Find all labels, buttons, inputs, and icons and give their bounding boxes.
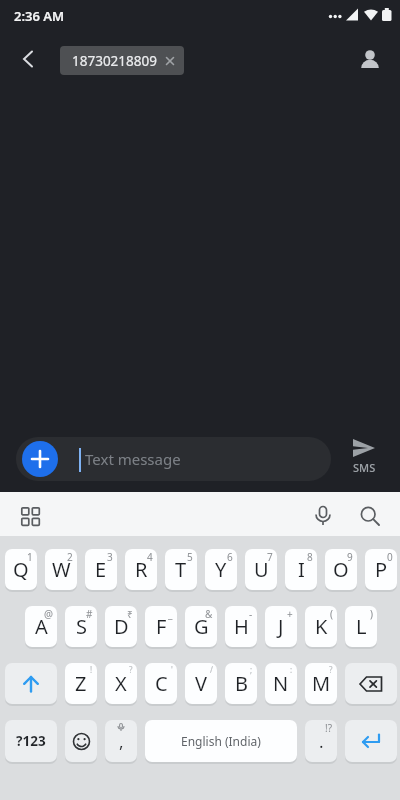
button[interactable]: I bbox=[285, 549, 317, 590]
staticText: D bbox=[114, 613, 129, 640]
button[interactable] bbox=[22, 441, 58, 477]
button[interactable]: A bbox=[25, 606, 57, 647]
staticText: Y bbox=[215, 556, 227, 583]
button[interactable]: M bbox=[305, 663, 337, 704]
staticText: N bbox=[273, 670, 289, 697]
staticText: ? bbox=[329, 664, 333, 675]
button[interactable]: 18730218809 bbox=[60, 46, 184, 75]
staticText: W bbox=[52, 556, 71, 583]
staticText: O bbox=[333, 556, 349, 583]
staticText: . bbox=[319, 730, 324, 753]
button[interactable]: English (India) bbox=[145, 720, 297, 762]
button[interactable]: C bbox=[145, 663, 177, 704]
staticText: H bbox=[234, 613, 249, 640]
staticText: X bbox=[115, 670, 127, 697]
staticText: R bbox=[135, 556, 148, 583]
staticText: Text message bbox=[85, 449, 181, 469]
button[interactable]: B bbox=[225, 663, 257, 704]
staticText: ?123 bbox=[16, 732, 46, 750]
staticText: 18730218809 bbox=[72, 52, 157, 70]
staticText: Z bbox=[75, 670, 87, 697]
staticText: A bbox=[35, 613, 48, 640]
button[interactable]: G bbox=[185, 606, 217, 647]
button[interactable] bbox=[5, 663, 57, 704]
staticText: K bbox=[315, 613, 328, 640]
button[interactable] bbox=[65, 720, 97, 762]
button[interactable] bbox=[345, 663, 397, 704]
staticText: 2:36 AM bbox=[14, 7, 65, 25]
staticText: @ bbox=[44, 607, 53, 621]
staticText: U bbox=[254, 556, 269, 583]
button[interactable]: Z bbox=[65, 663, 97, 704]
button[interactable]: SMS bbox=[342, 436, 386, 484]
staticText: / bbox=[210, 664, 213, 675]
staticText: C bbox=[155, 670, 168, 697]
button[interactable]: R bbox=[125, 549, 157, 590]
button[interactable]: U bbox=[245, 549, 277, 590]
staticText: T bbox=[175, 556, 187, 583]
button[interactable] bbox=[345, 720, 397, 762]
button[interactable]: Q bbox=[5, 549, 37, 590]
button[interactable] bbox=[14, 44, 44, 74]
staticText: S bbox=[76, 613, 87, 640]
staticText: 8 bbox=[307, 550, 313, 564]
button[interactable]: X bbox=[105, 663, 137, 704]
staticText: 0 bbox=[387, 550, 393, 564]
staticText: 6 bbox=[227, 550, 233, 564]
staticText: 9 bbox=[347, 550, 353, 564]
staticText: + bbox=[287, 607, 293, 621]
staticText: 7 bbox=[267, 550, 273, 564]
button[interactable] bbox=[356, 45, 384, 73]
button[interactable]: L bbox=[345, 606, 377, 647]
button[interactable] bbox=[16, 502, 44, 530]
button[interactable]: P bbox=[365, 549, 397, 590]
button[interactable]: J bbox=[265, 606, 297, 647]
staticText: M bbox=[312, 670, 331, 697]
staticText: G bbox=[194, 613, 209, 640]
button[interactable]: . bbox=[305, 720, 337, 762]
staticText: 1 bbox=[27, 550, 33, 564]
button[interactable]: Y bbox=[205, 549, 237, 590]
staticText: ' bbox=[171, 664, 173, 675]
staticText: ? bbox=[129, 664, 133, 675]
button[interactable]: D bbox=[105, 606, 137, 647]
staticText: , bbox=[119, 730, 124, 753]
staticText: 2 bbox=[67, 550, 73, 564]
staticText: V bbox=[195, 670, 207, 697]
staticText: ₹ bbox=[127, 607, 133, 621]
button[interactable]: O bbox=[325, 549, 357, 590]
staticText: : bbox=[290, 664, 293, 675]
button[interactable] bbox=[309, 502, 337, 530]
staticText: !? bbox=[325, 721, 333, 735]
staticText: J bbox=[278, 613, 284, 640]
staticText: - bbox=[249, 607, 253, 621]
staticText: Q bbox=[13, 556, 29, 583]
staticText: 4 bbox=[147, 550, 153, 564]
button[interactable]: N bbox=[265, 663, 297, 704]
staticText: ; bbox=[250, 664, 253, 675]
button[interactable]: W bbox=[45, 549, 77, 590]
button[interactable]: V bbox=[185, 663, 217, 704]
button[interactable]: K bbox=[305, 606, 337, 647]
button[interactable] bbox=[356, 502, 384, 530]
staticText: & bbox=[205, 607, 213, 621]
button[interactable]: E bbox=[85, 549, 117, 590]
staticText: F bbox=[156, 613, 167, 640]
staticText: I bbox=[298, 556, 305, 583]
button[interactable]: S bbox=[65, 606, 97, 647]
button[interactable] bbox=[16, 437, 331, 481]
staticText: English (India) bbox=[181, 733, 261, 749]
staticText: 3 bbox=[107, 550, 113, 564]
button[interactable]: T bbox=[165, 549, 197, 590]
staticText: ! bbox=[90, 664, 93, 675]
staticText: E bbox=[95, 556, 107, 583]
button[interactable]: H bbox=[225, 606, 257, 647]
staticText: ( bbox=[330, 607, 333, 621]
button[interactable]: ?123 bbox=[5, 720, 57, 762]
staticText: B bbox=[235, 670, 248, 697]
staticText: ) bbox=[370, 607, 373, 621]
staticText: _ bbox=[168, 607, 173, 621]
staticText: P bbox=[375, 556, 388, 583]
button[interactable]: , bbox=[105, 720, 137, 762]
button[interactable]: F bbox=[145, 606, 177, 647]
